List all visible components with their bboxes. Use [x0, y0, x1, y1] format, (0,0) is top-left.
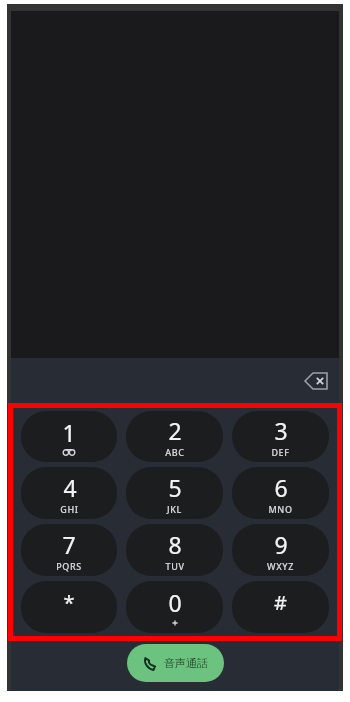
staticText: ABC: [165, 446, 185, 458]
staticText: 7: [62, 529, 76, 560]
staticText: 4: [63, 472, 77, 503]
button[interactable]: 4: [21, 467, 117, 519]
button[interactable]: 3: [232, 411, 329, 462]
button[interactable]: #: [232, 581, 329, 633]
button[interactable]: 0: [126, 581, 223, 633]
button[interactable]: 7: [21, 524, 117, 576]
staticText: 0: [168, 587, 182, 618]
button[interactable]: 5: [126, 467, 223, 519]
staticText: PQRS: [56, 560, 82, 572]
staticText: 5: [168, 472, 182, 503]
button[interactable]: 2: [126, 411, 223, 462]
button[interactable]: 8: [126, 524, 223, 576]
button[interactable]: 音声通話: [127, 644, 224, 682]
button[interactable]: 6: [232, 467, 329, 519]
button[interactable]: 1: [21, 411, 117, 462]
button[interactable]: 9: [232, 524, 329, 576]
staticText: 2: [168, 415, 182, 446]
staticText: TUV: [165, 560, 185, 572]
staticText: *: [63, 589, 75, 616]
button[interactable]: *: [21, 581, 117, 633]
button[interactable]: Backspace: [299, 364, 333, 398]
staticText: 1: [62, 417, 76, 448]
staticText: JKL: [167, 503, 182, 515]
staticText: GHI: [60, 503, 79, 515]
staticText: 3: [274, 415, 288, 446]
staticText: DEF: [271, 446, 290, 458]
staticText: 6: [274, 472, 288, 503]
staticText: 音声通話: [164, 656, 208, 670]
staticText: 8: [168, 529, 182, 560]
staticText: 9: [274, 529, 288, 560]
staticText: WXYZ: [267, 560, 294, 572]
staticText: MNO: [268, 503, 293, 515]
staticText: #: [274, 589, 287, 616]
